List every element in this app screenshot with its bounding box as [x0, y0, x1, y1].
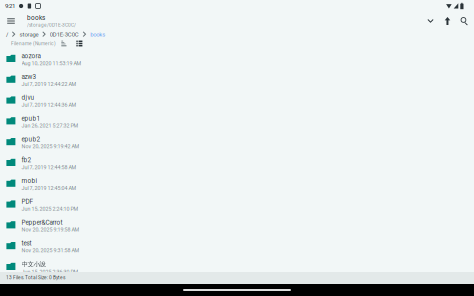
- staticText: storage: [19, 31, 38, 38]
- staticText: Nov 20, 2025 9:19:58 AM: [22, 227, 80, 233]
- button[interactable]: epub1: [0, 110, 474, 131]
- staticText: Nov 20, 2025 9:31:58 AM: [22, 247, 80, 254]
- button[interactable]: fb2: [0, 152, 474, 173]
- staticText: 中文小說: [22, 260, 46, 268]
- staticText: Nov 20, 2025 9:19:42 AM: [22, 143, 80, 150]
- staticText: fb2: [22, 156, 32, 164]
- button[interactable]: Navigation menu: [1, 12, 21, 30]
- button[interactable]: Search: [456, 12, 473, 29]
- button[interactable]: /: [6, 31, 8, 38]
- button[interactable]: azw3: [0, 69, 474, 90]
- staticText: azw3: [22, 73, 37, 81]
- staticText: /: [6, 31, 8, 38]
- button[interactable]: test: [0, 235, 474, 256]
- button[interactable]: 中文小說: [0, 256, 474, 277]
- staticText: Aug 10, 2020 11:53:19 AM: [22, 60, 82, 66]
- staticText: 13 Files. Total Size: 0 Bytes: [6, 275, 65, 280]
- button[interactable]: storage: [19, 31, 38, 38]
- staticText: Pepper&Carrot: [22, 219, 63, 226]
- staticText: Jul 7, 2019 12:44:36 AM: [22, 102, 77, 108]
- button[interactable]: books: [90, 31, 105, 38]
- staticText: djvu: [22, 94, 35, 101]
- staticText: mobi: [22, 177, 38, 185]
- button[interactable]: Change view layout: [75, 39, 84, 48]
- staticText: Jul 7, 2019 12:44:58 AM: [22, 164, 77, 170]
- staticText: 9:21: [5, 2, 15, 10]
- button[interactable]: djvu: [0, 90, 474, 110]
- button[interactable]: Show more options: [422, 12, 439, 29]
- staticText: Jun 15, 2025 2:24:10 PM: [22, 206, 79, 212]
- button[interactable]: mobi: [0, 173, 474, 194]
- staticText: /storage/0D1E-3C0C/: [27, 22, 76, 28]
- button[interactable]: aozora: [0, 48, 474, 69]
- staticText: books: [27, 14, 45, 21]
- button[interactable]: Upload: [439, 12, 456, 29]
- staticText: test: [22, 239, 32, 247]
- staticText: Filename (Numeric): [11, 41, 56, 46]
- staticText: Jan 26, 2021 5:27:32 PM: [22, 123, 79, 129]
- staticText: books: [90, 31, 105, 38]
- staticText: epub1: [22, 115, 41, 122]
- button[interactable]: epub2: [0, 131, 474, 152]
- staticText: Jun 15, 2025 2:36:30 PM: [22, 269, 79, 275]
- button[interactable]: PDF: [0, 194, 474, 214]
- staticText: Jul 7, 2019 12:44:22 AM: [22, 81, 77, 87]
- button[interactable]: Pepper&Carrot: [0, 214, 474, 235]
- staticText: 0D1E-3C0C: [50, 31, 79, 38]
- button[interactable]: Sort order: [59, 39, 68, 48]
- staticText: aozora: [22, 52, 41, 60]
- staticText: epub2: [22, 135, 41, 143]
- staticText: Jul 7, 2019 12:45:04 AM: [22, 185, 77, 191]
- staticText: PDF: [22, 198, 34, 205]
- button[interactable]: 0D1E-3C0C: [50, 31, 79, 38]
- button[interactable]: Filename (Numeric): [11, 41, 56, 46]
